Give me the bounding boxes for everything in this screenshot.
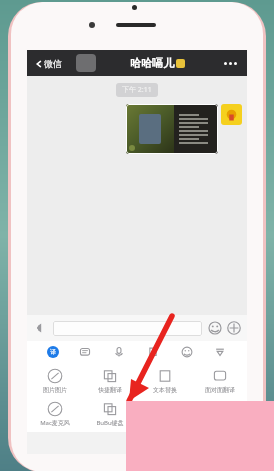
button[interactable]: Add	[226, 320, 242, 336]
button[interactable]: Voice	[112, 345, 126, 359]
button[interactable]: Smiley	[180, 345, 194, 359]
staticText: 译	[50, 348, 56, 356]
staticText: BuBu键盘	[96, 419, 124, 427]
button[interactable]: Mac麦克风	[27, 400, 82, 428]
button[interactable]: BuBu键盘	[82, 400, 137, 428]
button[interactable]	[126, 104, 218, 154]
staticText: 图片图片	[43, 386, 67, 394]
button[interactable]: Emoji	[207, 320, 223, 336]
button[interactable]: 文本替换	[137, 367, 192, 395]
staticText: 哈哈嗝儿	[130, 56, 174, 70]
staticText: 微信	[44, 58, 62, 69]
button[interactable]: 设置	[27, 432, 247, 454]
button[interactable]: 微信	[33, 58, 64, 69]
button[interactable]	[53, 321, 202, 336]
button[interactable]: Voice input	[32, 320, 48, 336]
button[interactable]: Collapse	[213, 345, 227, 359]
staticText: 下午 2:11	[122, 85, 152, 95]
button[interactable]: Chat	[78, 345, 92, 359]
button[interactable]: Text	[146, 345, 160, 359]
button[interactable]: 快捷翻译	[82, 367, 137, 395]
button[interactable]: Translate	[47, 346, 59, 358]
staticText: 面对面翻译	[205, 386, 235, 394]
staticText: 快捷翻译	[98, 386, 122, 394]
button[interactable]: 面对面翻译	[192, 367, 247, 395]
button[interactable]	[192, 400, 247, 428]
staticText: 文本替换	[153, 386, 177, 394]
button[interactable]: 图片图片	[27, 367, 82, 395]
button[interactable]	[137, 400, 192, 428]
staticText: Mac麦克风	[40, 419, 70, 427]
button[interactable]: More options	[220, 58, 241, 69]
